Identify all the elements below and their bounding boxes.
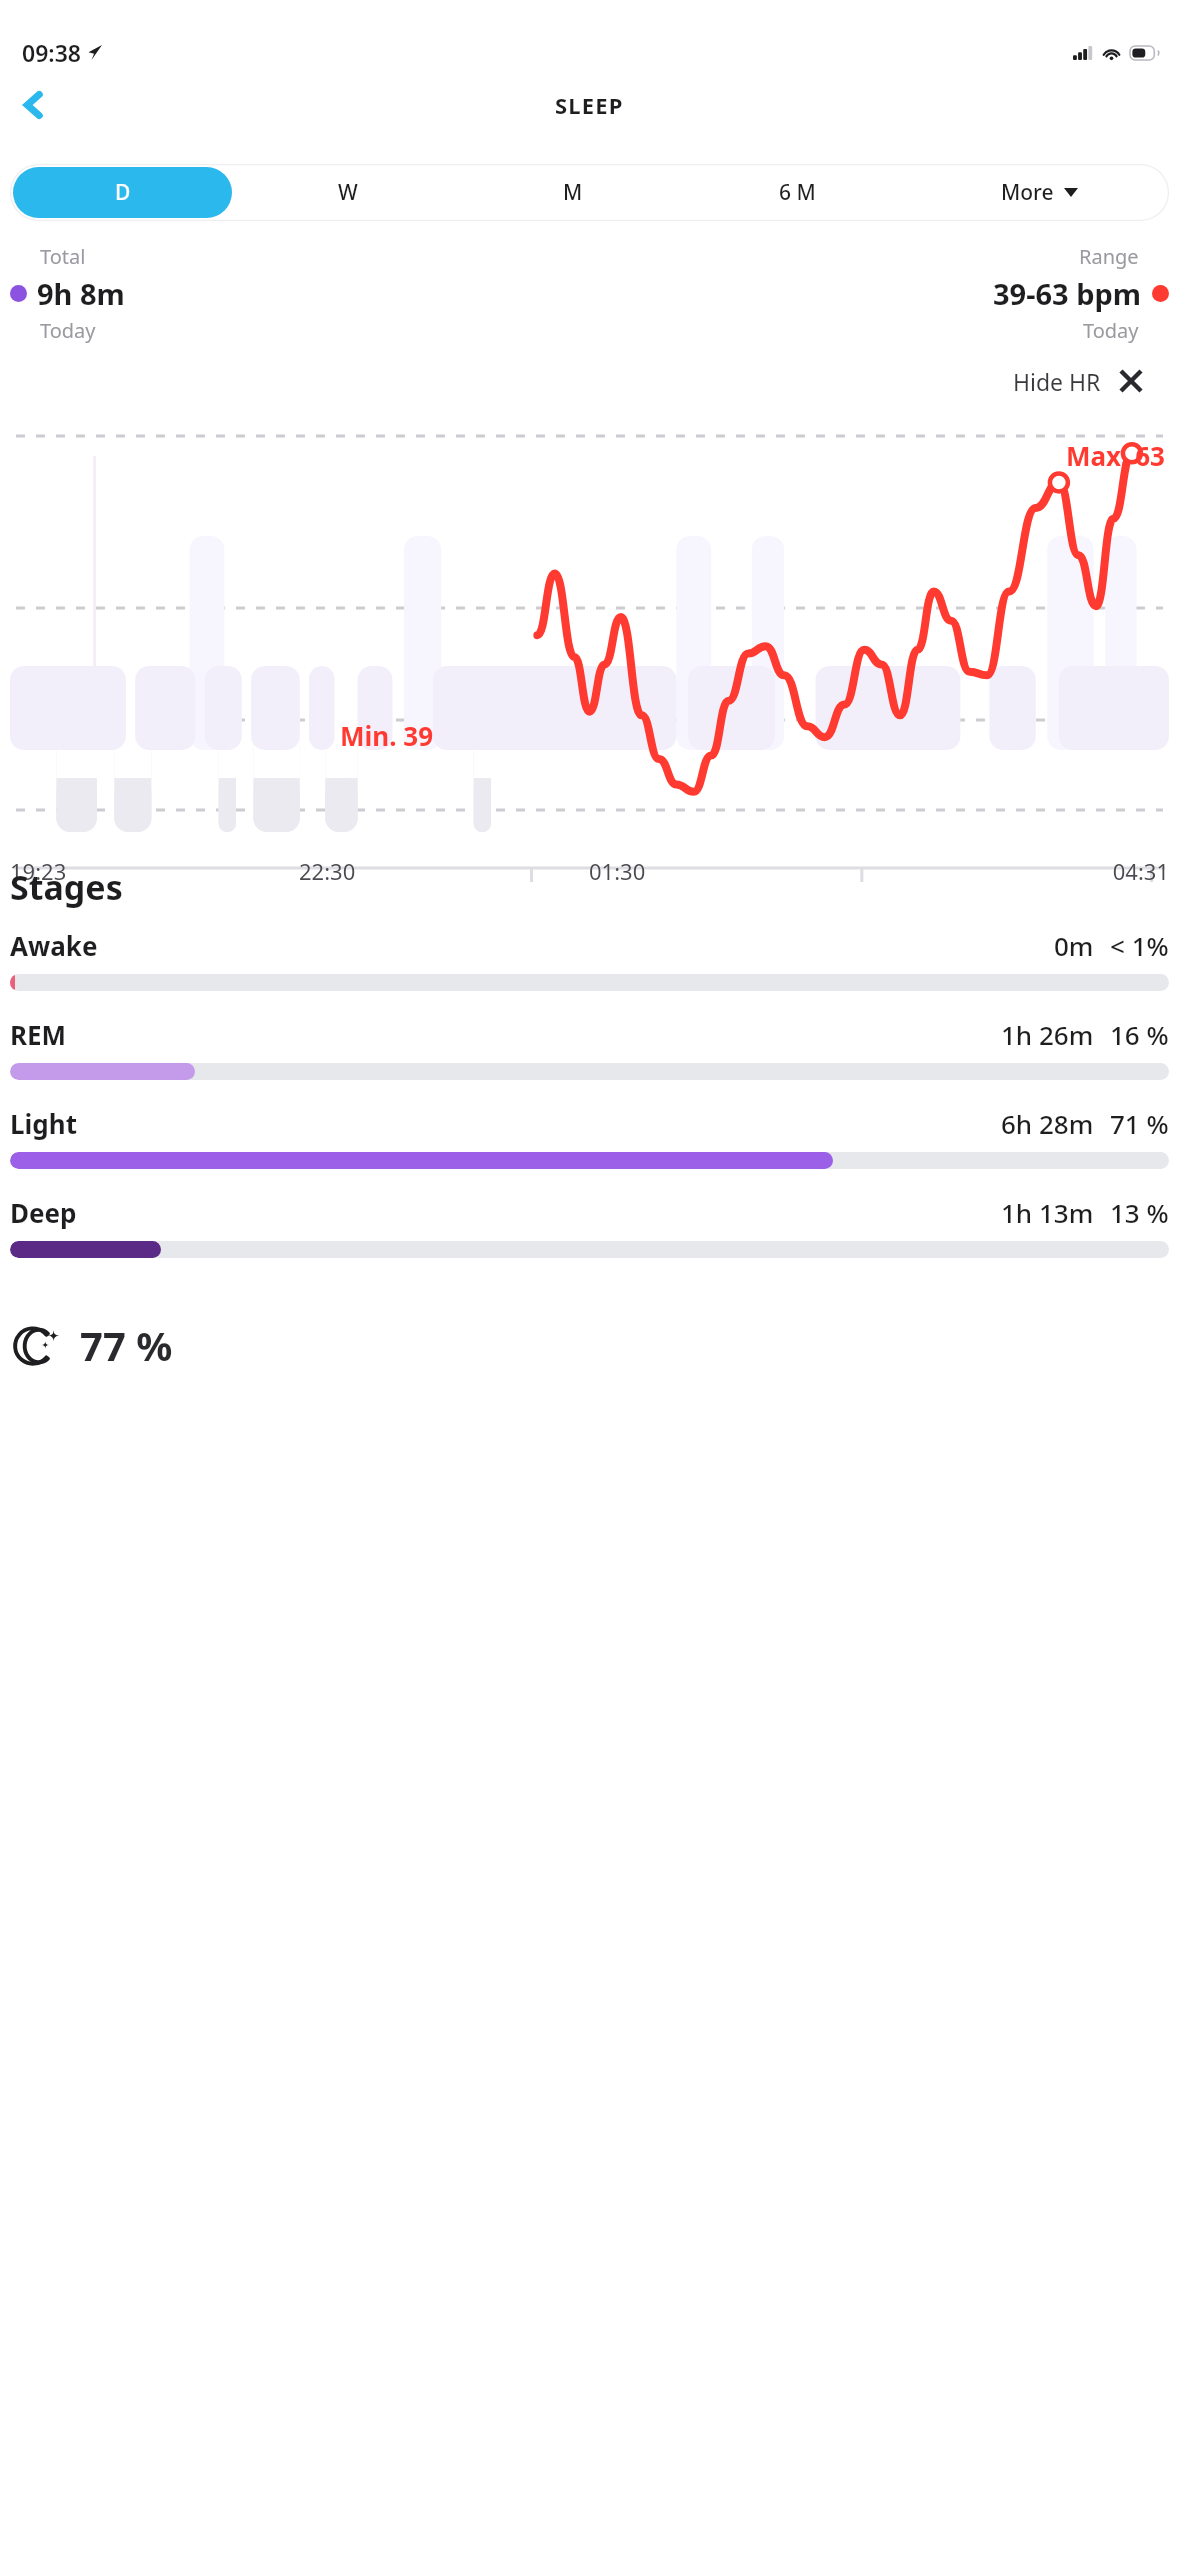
staticText: 04:31 [879, 856, 1169, 886]
staticText: 13 % [1110, 1195, 1169, 1230]
staticText: 01:30 [589, 856, 879, 886]
button[interactable]: Hide HR [985, 350, 1169, 412]
button[interactable]: REM [10, 1017, 1169, 1106]
staticText: 77 % [80, 1318, 173, 1372]
staticText: 19:23 [10, 856, 299, 886]
staticText: REM [10, 1017, 67, 1052]
button[interactable]: Awake [10, 928, 1169, 1017]
staticText: SLEEP [555, 90, 624, 120]
button[interactable]: Back [6, 77, 62, 133]
button[interactable]: M [463, 167, 682, 218]
button[interactable]: W [238, 167, 457, 218]
staticText: D [115, 178, 131, 207]
staticText: Stages [10, 864, 123, 910]
staticText: 1h 26m [1001, 1017, 1094, 1052]
staticText: M [563, 178, 583, 207]
staticText: 6 M [779, 178, 816, 207]
staticText: Total [40, 243, 86, 270]
staticText: 9h 8m [37, 274, 125, 313]
staticText: Max. 63 [1066, 438, 1165, 473]
button[interactable]: 6 M [688, 167, 907, 218]
staticText: Min. 39 [340, 718, 434, 753]
staticText: Hide HR [1013, 366, 1101, 397]
button[interactable]: Light [10, 1106, 1169, 1195]
staticText: 6h 28m [1001, 1106, 1094, 1141]
button[interactable]: Deep [10, 1195, 1169, 1284]
staticText: Deep [10, 1195, 77, 1230]
staticText: Today [1083, 317, 1139, 344]
staticText: 39-63 bpm [993, 274, 1142, 313]
staticText: 1h 13m [1001, 1195, 1094, 1230]
staticText: < 1% [1110, 928, 1169, 963]
staticText: More [1001, 178, 1054, 207]
button[interactable]: D [13, 167, 232, 218]
staticText: 09:38 [22, 37, 81, 68]
staticText: Light [10, 1106, 77, 1141]
staticText: 71 % [1110, 1106, 1169, 1141]
staticText: Range [1079, 243, 1139, 270]
staticText: 0m [1054, 928, 1094, 963]
staticText: 22:30 [299, 856, 589, 886]
staticText: Awake [10, 928, 98, 963]
button[interactable]: More [910, 164, 1169, 221]
staticText: 16 % [1110, 1017, 1169, 1052]
staticText: W [338, 178, 358, 207]
staticText: Today [40, 317, 96, 344]
